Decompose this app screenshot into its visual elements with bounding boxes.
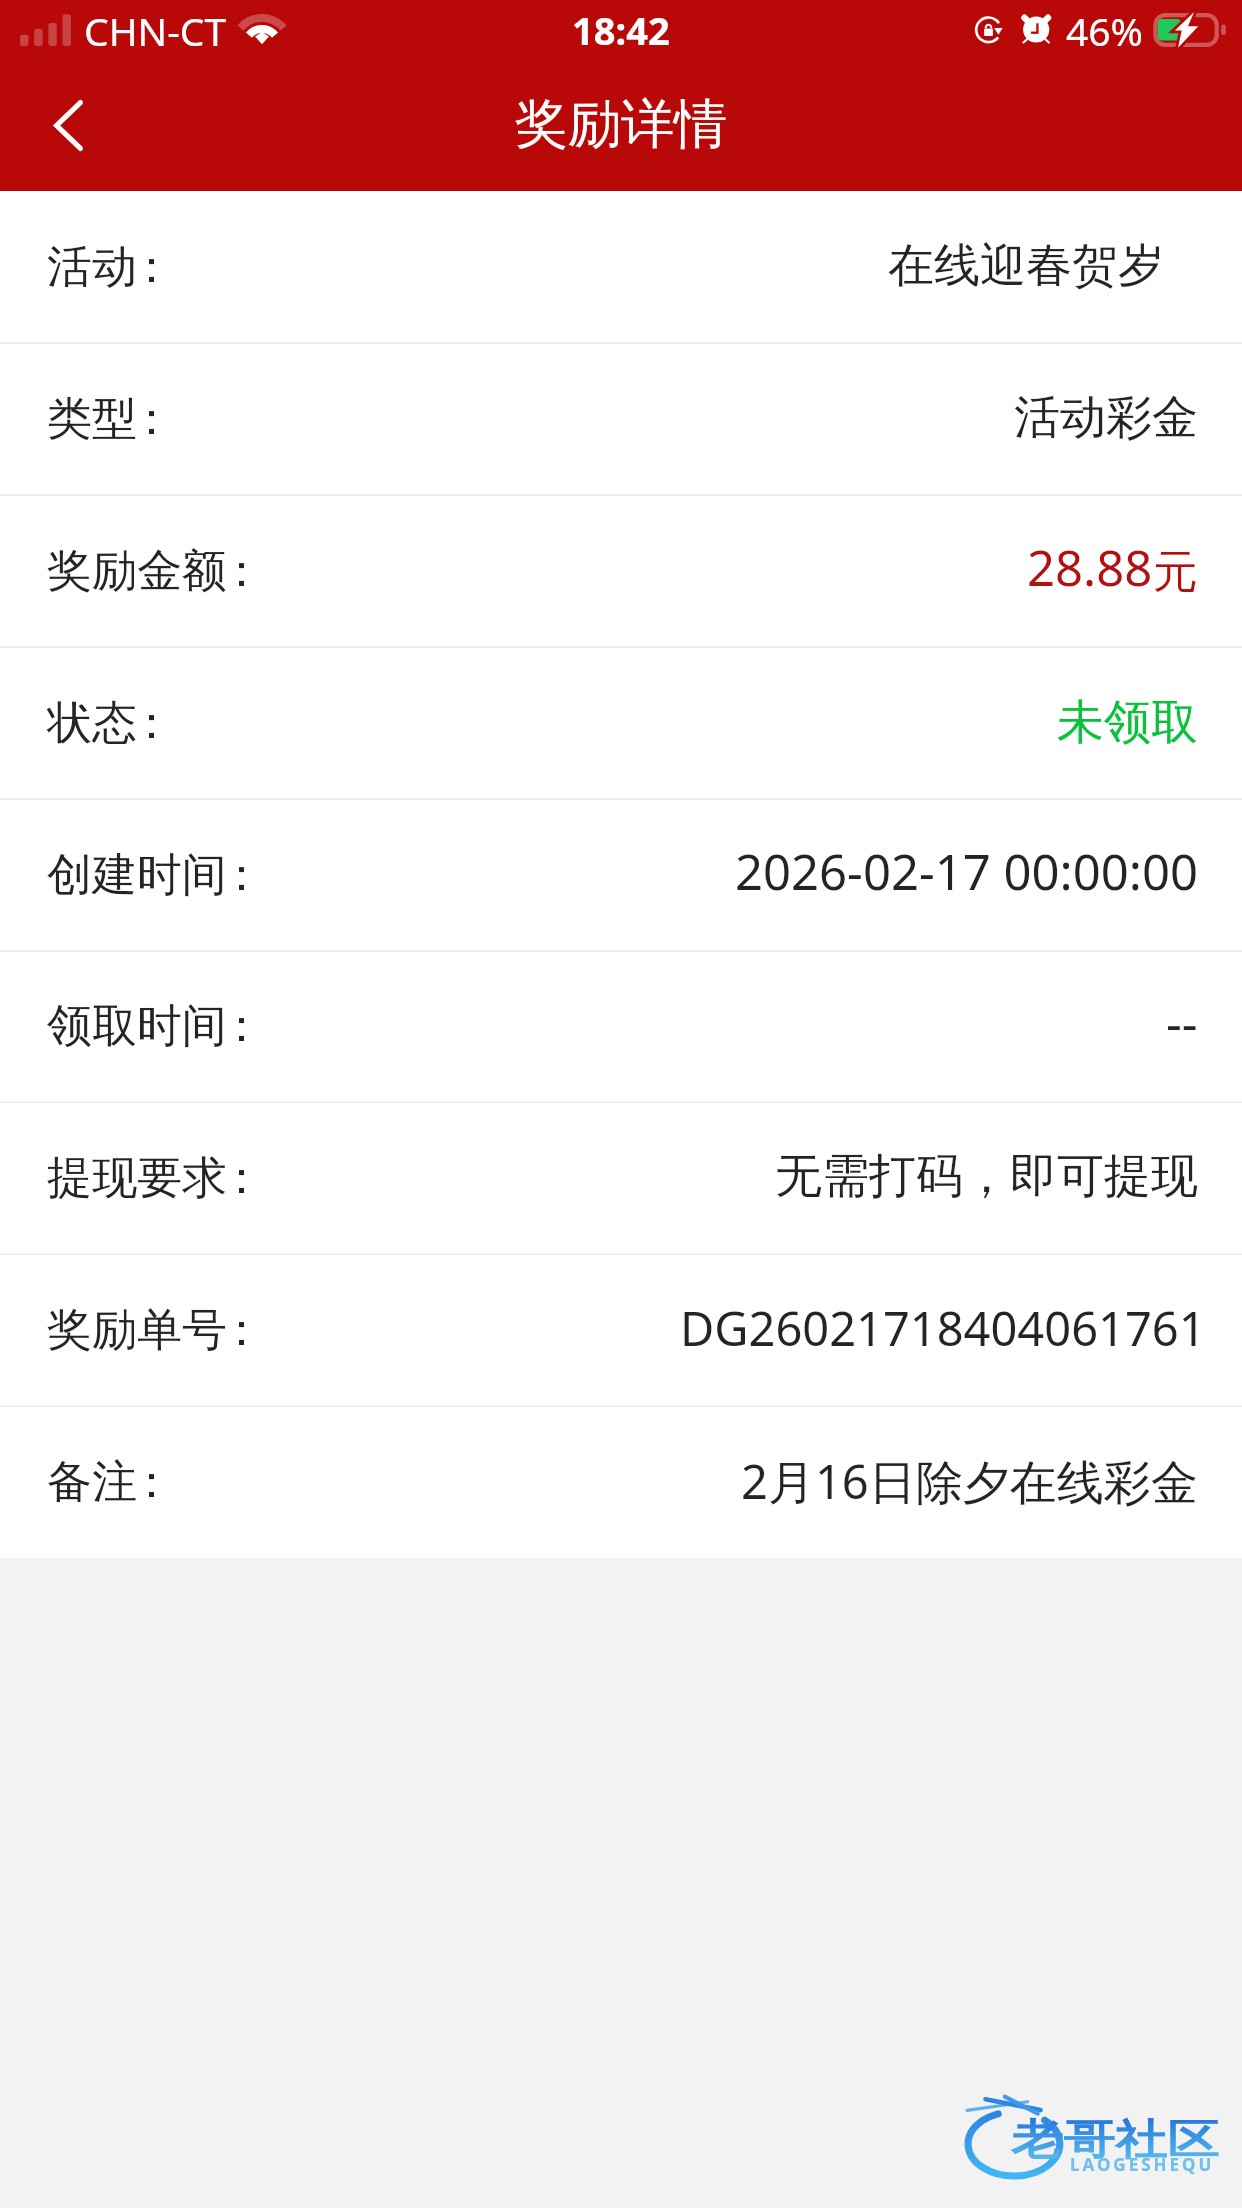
staticText: 备注 xyxy=(47,1454,137,1511)
staticText: 2月16日除夕在线彩金 xyxy=(741,1449,1198,1513)
staticText: ： xyxy=(219,847,264,904)
staticText: ： xyxy=(219,998,264,1055)
staticText: 活动 xyxy=(47,239,137,296)
staticText: ： xyxy=(219,1302,264,1359)
staticText: 2026-02-17 00:00:00 xyxy=(735,838,1198,905)
staticText: -- xyxy=(1166,989,1198,1056)
staticText: 老哥社区 xyxy=(1011,2114,1219,2166)
staticText: ： xyxy=(219,1150,264,1207)
button[interactable]: 活动 xyxy=(0,191,1242,343)
staticText: ： xyxy=(219,543,264,600)
button[interactable]: Back xyxy=(0,59,118,191)
staticText: 无需打码，即可提现 xyxy=(775,1147,1198,1206)
button[interactable]: 备注 xyxy=(0,1406,1242,1558)
button[interactable]: 奖励单号 xyxy=(0,1254,1242,1406)
staticText: 提现要求 xyxy=(47,1150,227,1207)
staticText: 类型 xyxy=(47,391,137,448)
staticText: 46% xyxy=(1066,4,1144,57)
button[interactable]: 奖励金额 xyxy=(0,495,1242,647)
button[interactable]: 创建时间 xyxy=(0,799,1242,951)
button[interactable]: 领取时间 xyxy=(0,951,1242,1102)
staticText: LAOGESHEQU xyxy=(1070,2153,1215,2176)
staticText: 28.88 xyxy=(1027,534,1153,601)
staticText: ： xyxy=(129,1454,174,1511)
staticText: CHN-CT xyxy=(84,4,227,57)
staticText: 元 xyxy=(1153,544,1198,601)
staticText: 奖励详情 xyxy=(515,91,727,158)
staticText: 奖励金额 xyxy=(47,543,227,600)
staticText: 活动彩金 xyxy=(1014,389,1198,447)
staticText: 状态 xyxy=(47,695,137,752)
staticText: 领取时间 xyxy=(47,998,227,1055)
button[interactable]: 类型 xyxy=(0,343,1242,495)
staticText: 未领取 xyxy=(1057,693,1198,752)
staticText: ： xyxy=(129,391,174,448)
staticText: 奖励单号 xyxy=(47,1302,227,1359)
staticText: ： xyxy=(129,695,174,752)
button[interactable]: 状态 xyxy=(0,647,1242,799)
staticText: 创建时间 xyxy=(47,847,227,904)
staticText: DG26021718404061761 xyxy=(680,1296,1206,1360)
staticText: 18:42 xyxy=(572,4,670,56)
staticText: 在线迎春贺岁 xyxy=(888,237,1164,295)
staticText: ： xyxy=(129,239,174,296)
button[interactable]: 提现要求 xyxy=(0,1102,1242,1254)
